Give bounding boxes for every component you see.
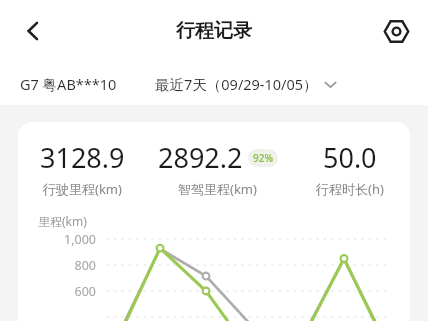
button[interactable]: 2892.2 <box>146 139 289 198</box>
staticText: 行程记录 <box>176 19 252 43</box>
staticText: 1,000 <box>18 231 96 247</box>
button[interactable]: Settings <box>374 9 418 53</box>
staticText: 600 <box>18 283 96 299</box>
button[interactable]: 最近7天（09/29-10/05） <box>151 69 341 99</box>
staticText: 智驾里程(km) <box>178 180 257 198</box>
staticText: 里程(km) <box>38 213 87 229</box>
staticText: 2892.2 <box>158 139 243 176</box>
staticText: 最近7天（09/29-10/05） <box>155 74 318 94</box>
staticText: 3128.9 <box>40 139 125 176</box>
staticText: 行驶里程(km) <box>43 180 122 198</box>
staticText: 行程时长(h) <box>316 180 384 198</box>
button[interactable]: G7 粤AB***10 <box>16 69 121 99</box>
staticText: 92% <box>253 151 273 165</box>
button[interactable]: 3128.9 <box>18 139 146 198</box>
staticText: 800 <box>18 257 96 273</box>
staticText: 50.0 <box>323 139 377 176</box>
staticText: G7 粤AB***10 <box>20 74 117 94</box>
button[interactable]: Back <box>10 8 56 54</box>
button[interactable]: 50.0 <box>289 139 410 198</box>
